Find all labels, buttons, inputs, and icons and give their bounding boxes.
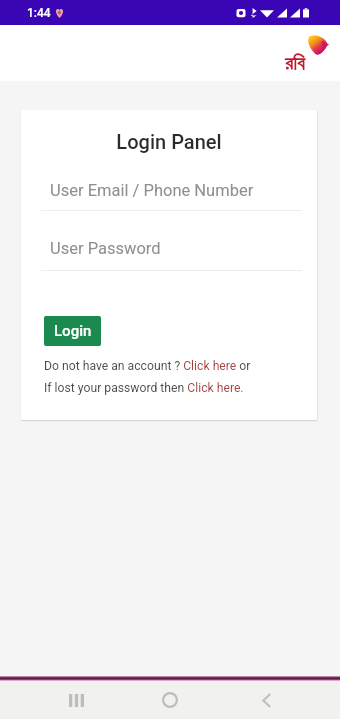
button[interactable]: Login <box>44 316 101 346</box>
staticText: 1:44 <box>27 6 51 20</box>
staticText: User Password <box>50 239 161 258</box>
staticText: User Email / Phone Number <box>50 181 254 200</box>
staticText: Login Panel <box>21 130 317 153</box>
staticText: Login <box>54 322 92 340</box>
button[interactable]: Back <box>243 681 289 719</box>
button[interactable]: Home <box>147 681 193 719</box>
button[interactable]: Do not have an account ? Click here or <box>44 359 251 373</box>
button[interactable]: Recent apps <box>53 681 99 719</box>
button[interactable]: If lost your password then Click here. <box>44 381 244 395</box>
staticText: রবি <box>285 54 305 74</box>
